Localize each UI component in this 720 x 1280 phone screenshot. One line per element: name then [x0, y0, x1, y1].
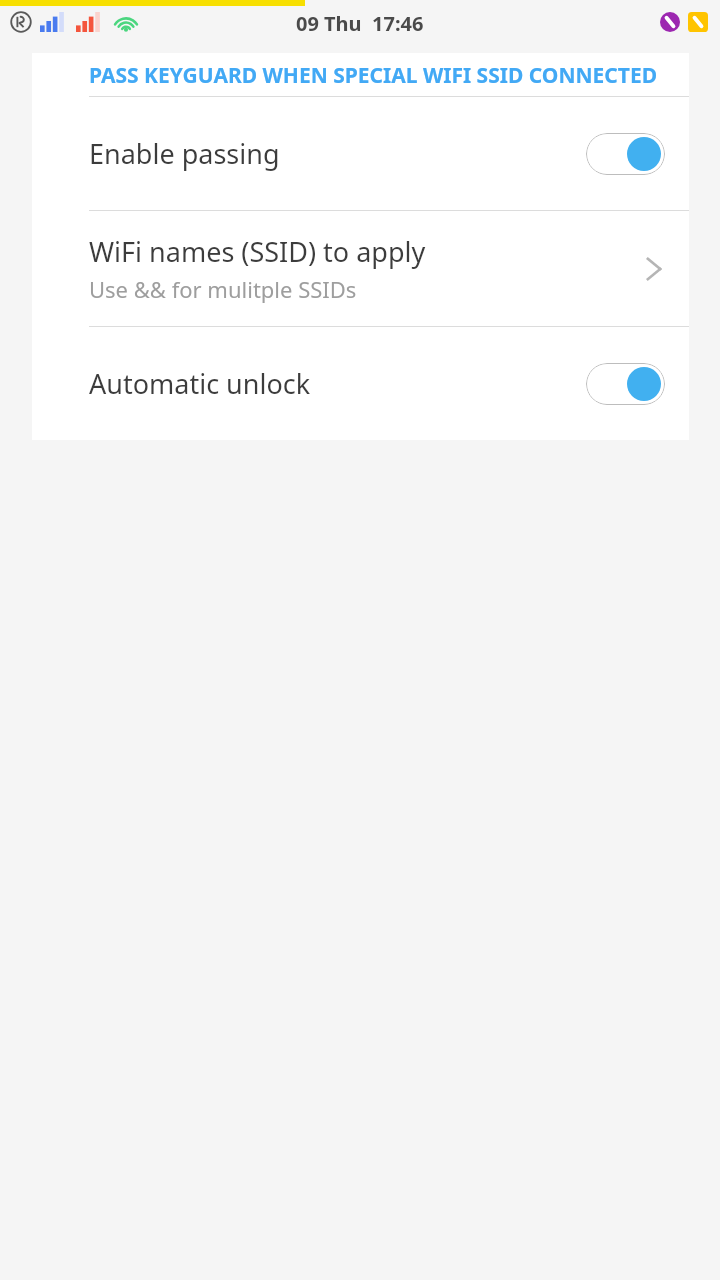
staticText: WiFi names (SSID) to apply	[89, 233, 426, 270]
button[interactable]: Enable passing	[32, 97, 689, 210]
staticText: PASS KEYGUARD WHEN SPECIAL WIFI SSID CON…	[89, 61, 658, 90]
staticText: Enable passing	[89, 135, 586, 172]
other: Call app notification	[660, 12, 680, 32]
other: Dialer notification	[688, 12, 708, 32]
button[interactable]: WiFi names (SSID) to apply	[32, 211, 689, 326]
staticText: Automatic unlock	[89, 365, 586, 402]
button[interactable]: Toggle on	[586, 133, 665, 175]
button[interactable]: Automatic unlock	[32, 327, 689, 440]
staticText: Use && for mulitple SSIDs	[89, 274, 357, 304]
staticText: 09 Thu 17:46	[296, 10, 424, 37]
button[interactable]: Toggle on	[586, 363, 665, 405]
